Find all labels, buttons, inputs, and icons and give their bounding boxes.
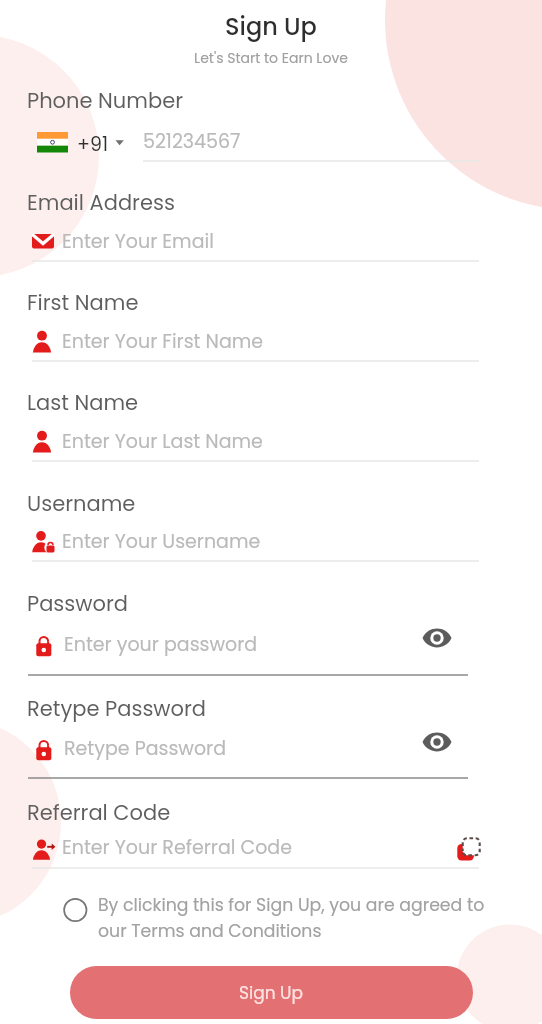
button[interactable]: Paste referral code: [450, 830, 490, 868]
button[interactable]: Phone number field: [136, 124, 482, 164]
button[interactable]: Last name field: [27, 422, 479, 464]
staticText: Referral Code: [27, 798, 171, 827]
button[interactable]: Password field: [27, 624, 412, 668]
staticText: Sign Up: [239, 981, 304, 1005]
staticText: Enter Your First Name: [62, 328, 264, 355]
staticText: Username: [27, 489, 136, 518]
staticText: Retype Password: [64, 735, 226, 762]
staticText: Email Address: [27, 188, 175, 217]
button[interactable]: Email address field: [27, 222, 479, 264]
button[interactable]: Sign Up: [70, 966, 473, 1019]
button[interactable]: Retype password field: [27, 728, 412, 772]
button[interactable]: Select country code: [33, 126, 129, 160]
staticText: Retype Password: [27, 694, 207, 723]
staticText: Sign Up: [0, 10, 542, 44]
staticText: Password: [27, 589, 128, 618]
staticText: Enter Your Username: [62, 528, 261, 555]
button[interactable]: Show retype password: [416, 722, 458, 762]
button[interactable]: First name field: [27, 322, 479, 364]
staticText: Phone Number: [27, 86, 183, 115]
staticText: Enter Your Last Name: [62, 428, 263, 455]
staticText: 521234567: [143, 128, 241, 155]
staticText: Last Name: [27, 388, 139, 417]
button[interactable]: Agree to terms and conditions: [56, 888, 98, 932]
staticText: +91: [77, 131, 109, 158]
staticText: Enter your password: [64, 631, 258, 658]
button[interactable]: Username field: [27, 522, 479, 564]
staticText: Enter Your Referral Code: [62, 834, 292, 861]
button[interactable]: Referral code field: [27, 828, 447, 870]
staticText: Enter Your Email: [62, 228, 214, 255]
staticText: Let's Start to Earn Love: [0, 48, 542, 68]
staticText: First Name: [27, 288, 139, 317]
button[interactable]: By clicking this for Sign Up, you are ag…: [98, 893, 503, 943]
button[interactable]: Show password: [416, 618, 458, 658]
